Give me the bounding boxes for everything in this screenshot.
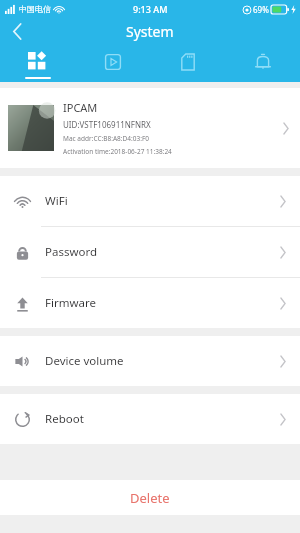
staticText: System: [126, 22, 174, 41]
staticText: WiFi: [45, 193, 280, 209]
button[interactable]: Storage: [150, 45, 225, 82]
button[interactable]: Password: [0, 227, 300, 277]
button[interactable]: Devices: [0, 45, 75, 82]
staticText: 中国电信: [19, 4, 51, 14]
staticText: UID:VSTF106911NFNRX: [63, 119, 151, 130]
staticText: Password: [45, 244, 280, 260]
button[interactable]: WiFi: [0, 176, 300, 226]
button[interactable]: Device volume: [0, 336, 300, 386]
staticText: Mac addr:CC:B8:A8:D4:03:F0: [63, 134, 150, 143]
staticText: Reboot: [45, 411, 280, 427]
button[interactable]: Live: [75, 45, 150, 82]
button[interactable]: Alerts: [225, 45, 300, 82]
staticText: Activation time:2018-06-27 11:38:24: [63, 147, 172, 156]
staticText: 69%: [253, 4, 269, 15]
button[interactable]: Delete: [0, 480, 300, 515]
staticText: Firmware: [45, 295, 280, 311]
button[interactable]: Firmware: [0, 278, 300, 328]
button[interactable]: Back: [0, 18, 34, 45]
staticText: IPCAM: [63, 100, 98, 115]
button[interactable]: IPCAM: [0, 88, 300, 168]
staticText: Device volume: [45, 353, 280, 369]
button[interactable]: Reboot: [0, 394, 300, 444]
staticText: 9:13 AM: [133, 3, 168, 15]
staticText: Delete: [130, 489, 170, 507]
